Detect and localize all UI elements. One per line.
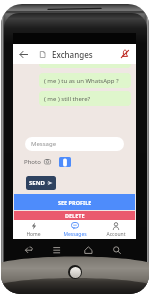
button[interactable]: Block contact [118, 44, 131, 64]
staticText: ( me ) still there? [44, 95, 91, 103]
staticText: ( me ) tu as un WhatsApp ? [44, 77, 119, 85]
staticText: SEE PROFILE [58, 199, 92, 206]
button[interactable]: ( me ) still there? [39, 91, 131, 106]
button[interactable]: Attach file [59, 157, 71, 167]
staticText: Account [106, 231, 126, 238]
staticText: Exchanges [52, 49, 93, 60]
button[interactable]: Back [16, 44, 30, 64]
button[interactable]: Messages [54, 220, 95, 239]
button[interactable]: ( me ) tu as un WhatsApp ? [39, 73, 131, 88]
button[interactable]: DELETE [14, 211, 135, 220]
button[interactable]: SEND [26, 176, 56, 190]
staticText: DELETE [65, 212, 85, 219]
button[interactable]: SEE PROFILE [14, 194, 135, 210]
staticText: Messages [63, 231, 87, 238]
button[interactable]: Home [13, 220, 54, 239]
button[interactable]: Account [95, 220, 136, 239]
staticText: Photo [24, 158, 41, 166]
staticText: Home [26, 231, 41, 238]
staticText: Message [31, 140, 57, 148]
staticText: SEND [29, 179, 45, 187]
button[interactable]: Take photo [43, 156, 52, 167]
button[interactable]: Message [25, 137, 124, 151]
